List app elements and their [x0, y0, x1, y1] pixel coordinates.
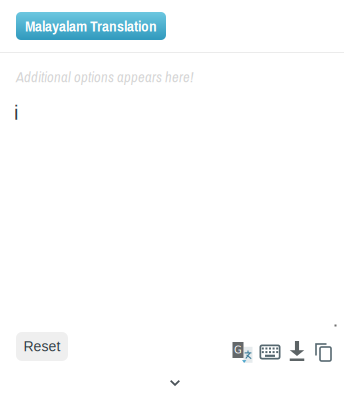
staticText: Malayalam Translation: [25, 16, 157, 36]
staticText: G: [234, 344, 242, 356]
button[interactable]: Malayalam Translation: [16, 12, 166, 40]
staticText: Additional options appears here!: [16, 67, 193, 87]
button[interactable]: Download: [284, 331, 310, 361]
button[interactable]: Translate: [228, 331, 256, 361]
staticText: Reset: [23, 339, 60, 354]
button[interactable]: Collapse: [158, 373, 186, 391]
staticText: i: [14, 102, 18, 124]
button[interactable]: Reset: [16, 332, 68, 361]
button[interactable]: Keyboard: [256, 331, 284, 361]
button[interactable]: Copy: [310, 331, 334, 361]
